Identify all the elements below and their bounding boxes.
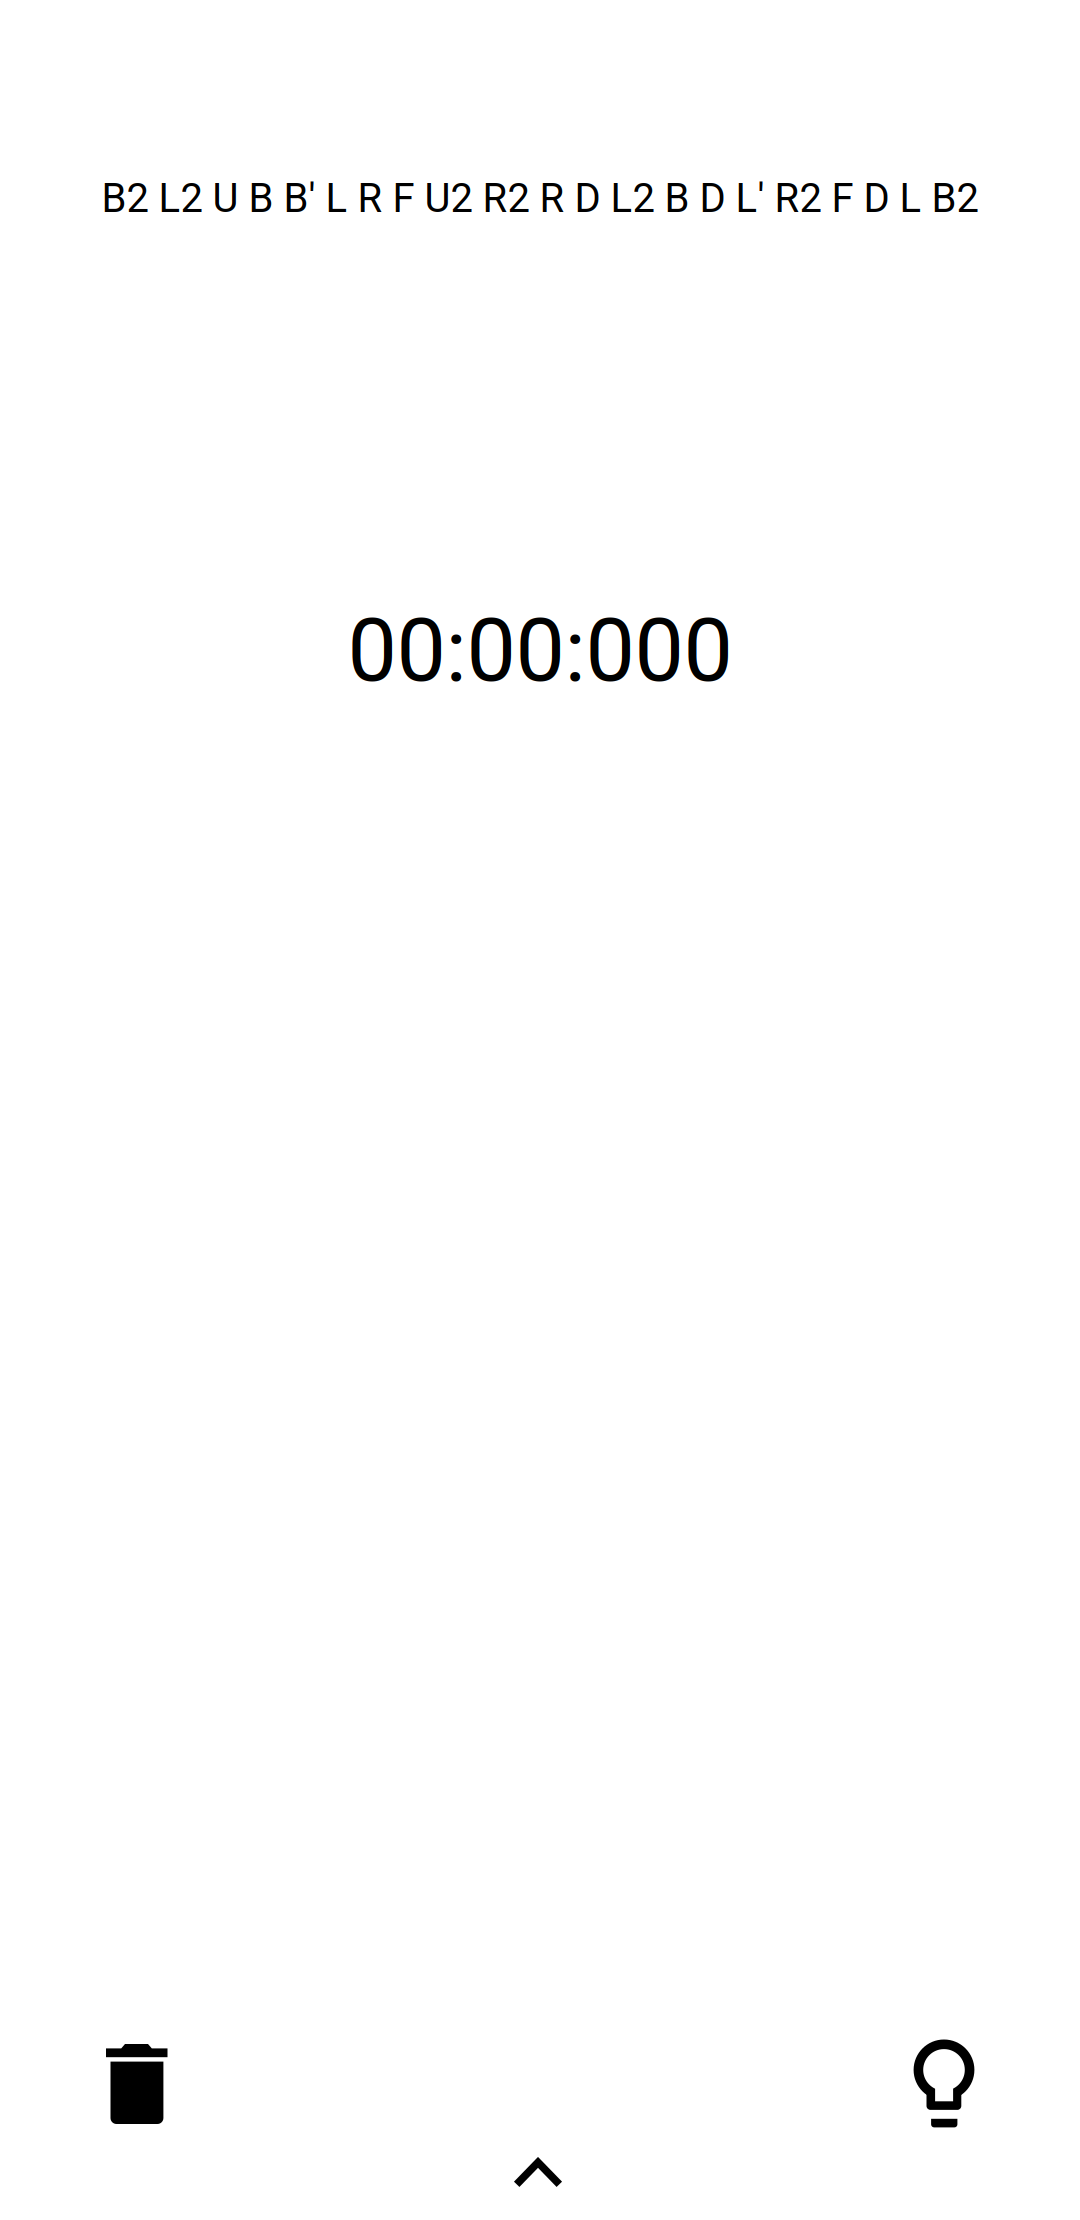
staticText: B2 L2 U B B' L R F U2 R2 R D L2 B D L' R… <box>101 175 978 222</box>
button[interactable]: 00:00:000 <box>0 599 1080 702</box>
button[interactable]: B2 L2 U B B' L R F U2 R2 R D L2 B D L' R… <box>0 175 1080 222</box>
button[interactable]: Show solve list <box>458 2138 622 2220</box>
button[interactable]: Delete solve <box>60 2021 197 2138</box>
staticText: 00:00:000 <box>347 599 732 702</box>
button[interactable]: Hint <box>882 2021 1020 2137</box>
